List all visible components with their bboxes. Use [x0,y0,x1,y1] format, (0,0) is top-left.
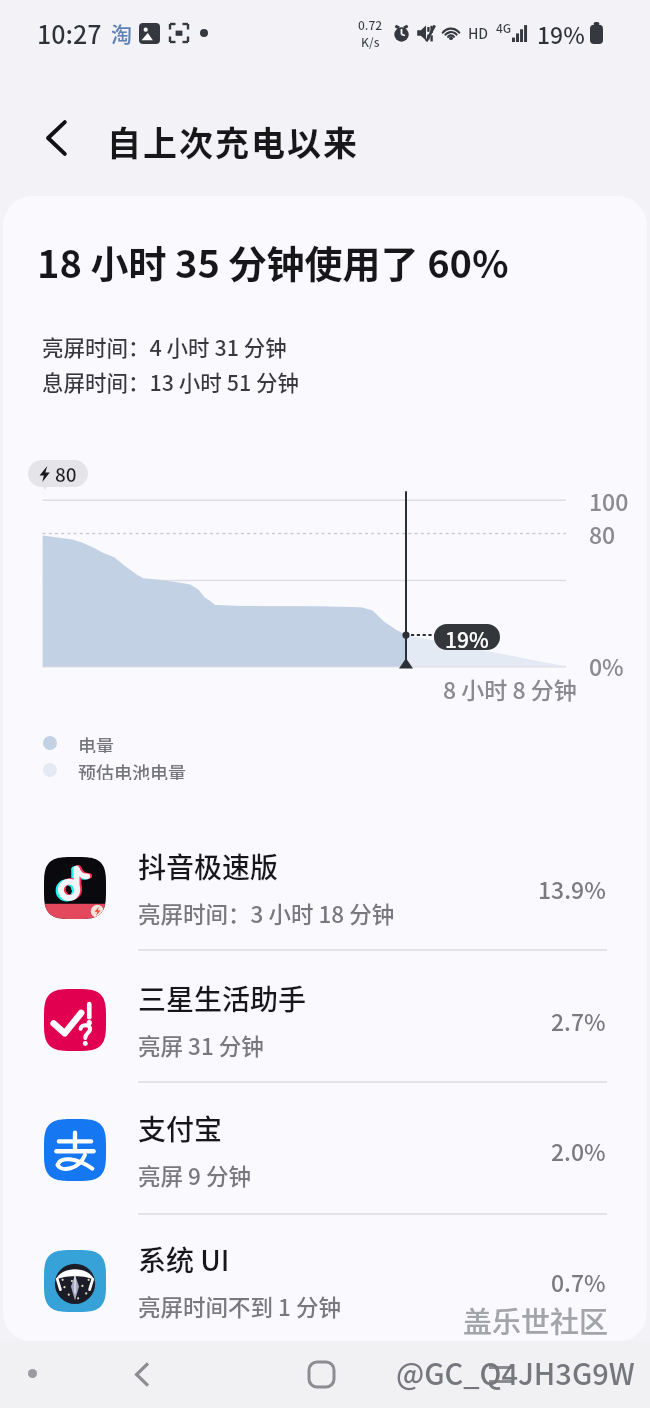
staticText: 19% [445,624,489,650]
staticText: 亮屏时间：4 小时 31 分钟 [42,331,287,362]
staticText: 预估电池电量 [78,759,186,780]
staticText: 2.7% [551,1004,606,1037]
staticText: 息屏时间：13 小时 51 分钟 [42,366,300,397]
staticText: 亮屏时间不到 1 分钟 [138,1290,341,1323]
staticText: 13.9% [538,872,606,905]
staticText: 8 小时 8 分钟 [443,672,577,705]
staticText: 系统 UI [138,1239,230,1280]
staticText: 亮屏 9 分钟 [138,1159,251,1192]
button[interactable]: Back [23,105,89,171]
staticText: 亮屏 31 分钟 [138,1029,264,1062]
button[interactable]: Back [113,1341,171,1408]
staticText: 电量 [78,732,114,753]
button[interactable]: 三星生活助手 [0,955,650,1085]
staticText: 2.0% [551,1134,606,1167]
button[interactable]: 支付宝 [0,1085,650,1215]
staticText: 支付宝 [138,1108,223,1149]
staticText: 10:27 [37,15,102,51]
staticText: 100 [589,484,629,517]
staticText: 亮屏时间：3 小时 18 分钟 [138,897,395,930]
button[interactable]: Recent apps [472,1341,530,1408]
staticText: 自上次充电以来 [107,117,359,166]
button[interactable]: 系统 UI [0,1216,650,1346]
staticText: 80 [589,517,616,550]
button[interactable]: Home [292,1341,350,1408]
staticText: 抖音极速版 [138,846,279,887]
staticText: 80 [55,460,77,487]
staticText: K/s [361,33,380,50]
staticText: 0.7% [551,1265,606,1298]
staticText: 19% [537,17,585,50]
staticText: HD [468,23,489,43]
button[interactable]: 抖音极速版 [0,823,650,953]
staticText: 0% [589,649,624,682]
staticText: @GC_Q4JH3G9W [396,1351,635,1393]
staticText: 4G [496,19,512,36]
staticText: 淘 [111,18,132,48]
staticText: 0.72 [358,16,383,33]
staticText: 18 小时 35 分钟使用了 60% [37,234,509,289]
staticText: 三星生活助手 [138,978,307,1019]
staticText: 盖乐世社区 [463,1299,609,1341]
